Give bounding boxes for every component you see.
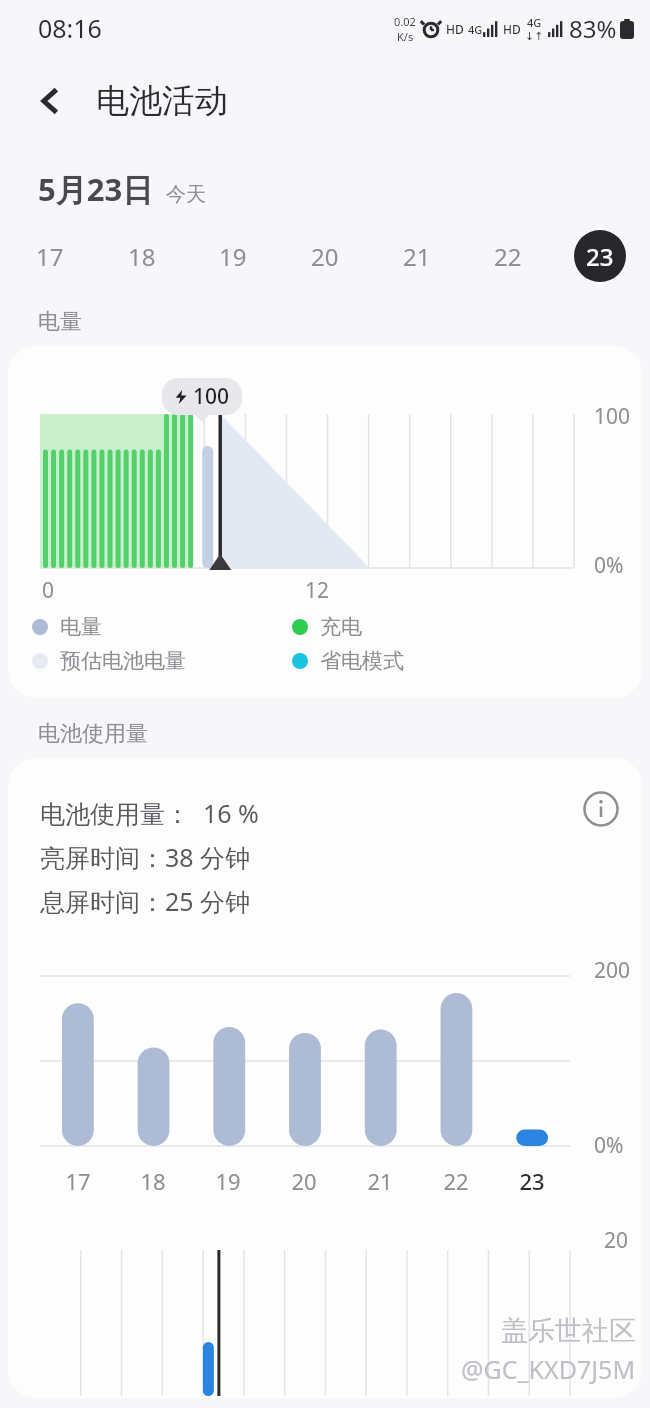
staticText: 亮屏时间：38 分钟 xyxy=(40,840,251,874)
staticText: 18 xyxy=(128,240,156,273)
staticText: 20 xyxy=(291,1166,317,1196)
staticText: 21 xyxy=(403,240,431,273)
staticText: 17 xyxy=(36,240,64,273)
staticText: 4G xyxy=(468,22,483,37)
staticText: 100 xyxy=(193,382,230,411)
button[interactable]: 电池使用量： 16 % xyxy=(8,758,642,1398)
staticText: 省电模式 xyxy=(320,648,404,674)
staticText: 22 xyxy=(443,1166,469,1196)
button[interactable]: 23 xyxy=(574,230,626,282)
staticText: 4G xyxy=(527,15,542,30)
staticText: HD xyxy=(446,21,464,37)
button[interactable]: 100 xyxy=(8,346,642,698)
staticText: 电池使用量： 16 % xyxy=(40,796,259,830)
button[interactable]: 19 xyxy=(207,230,259,282)
staticText: 08:16 xyxy=(38,11,102,45)
staticText: 23 xyxy=(586,240,614,273)
staticText: 0% xyxy=(594,1131,624,1160)
staticText: 18 xyxy=(140,1166,166,1196)
staticText: @GC_KXD7J5M xyxy=(461,1352,636,1386)
staticText: 0% xyxy=(594,551,624,580)
staticText: 今天 xyxy=(166,182,206,207)
staticText: 19 xyxy=(219,240,247,273)
button[interactable]: 22 xyxy=(482,230,534,282)
staticText: 充电 xyxy=(320,614,362,640)
staticText: HD xyxy=(503,21,521,37)
button[interactable]: Back xyxy=(24,74,78,128)
staticText: 5月23日 xyxy=(38,168,154,210)
staticText: 200 xyxy=(594,956,631,985)
staticText: 12 xyxy=(305,576,330,605)
staticText: 0.02 xyxy=(394,14,416,29)
button[interactable]: 17 xyxy=(24,230,76,282)
staticText: 息屏时间：25 分钟 xyxy=(40,884,251,918)
staticText: 83% xyxy=(569,12,617,45)
staticText: 20 xyxy=(311,240,339,273)
staticText: 电量 xyxy=(38,308,82,336)
staticText: 电量 xyxy=(60,614,102,640)
button[interactable]: 21 xyxy=(391,230,443,282)
button[interactable]: Info xyxy=(574,782,628,836)
staticText: K/s xyxy=(397,29,414,44)
staticText: 100 xyxy=(594,402,631,431)
staticText: 22 xyxy=(494,240,522,273)
button[interactable]: 20 xyxy=(299,230,351,282)
staticText: 预估电池电量 xyxy=(60,648,186,674)
staticText: 21 xyxy=(367,1166,393,1196)
staticText: 电池活动 xyxy=(96,80,228,122)
staticText: 电池使用量 xyxy=(38,720,148,748)
staticText: 0 xyxy=(42,576,55,605)
staticText: 盖乐世社区 xyxy=(501,1314,636,1348)
staticText: 23 xyxy=(519,1166,545,1196)
staticText: 19 xyxy=(215,1166,241,1196)
staticText: ↓↑ xyxy=(525,30,544,43)
staticText: 17 xyxy=(65,1166,91,1196)
staticText: 20 xyxy=(604,1226,629,1255)
button[interactable]: 18 xyxy=(116,230,168,282)
